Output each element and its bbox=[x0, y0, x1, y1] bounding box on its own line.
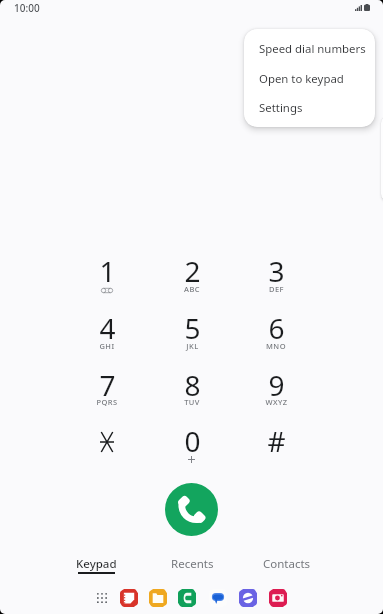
button[interactable]: 4 bbox=[69, 309, 145, 361]
staticText: 7 bbox=[99, 366, 116, 404]
staticText: 4 bbox=[99, 309, 116, 347]
staticText: WXYZ bbox=[265, 397, 288, 407]
staticText: Settings bbox=[259, 100, 303, 116]
button[interactable]: 3 bbox=[238, 252, 314, 304]
button[interactable]: # bbox=[238, 422, 314, 474]
staticText: 0 bbox=[184, 422, 201, 460]
staticText: Speed dial numbers bbox=[259, 41, 366, 57]
button[interactable]: Open to keypad bbox=[244, 64, 375, 94]
button[interactable]: Internet bbox=[239, 589, 257, 607]
staticText: Keypad bbox=[76, 556, 117, 572]
button[interactable]: Phone bbox=[178, 589, 196, 607]
button[interactable]: 5 bbox=[154, 309, 230, 361]
staticText: Recents bbox=[171, 556, 214, 572]
button[interactable]: Settings bbox=[244, 94, 375, 122]
button[interactable]: 8 bbox=[154, 366, 230, 418]
staticText: GHI bbox=[99, 341, 115, 351]
staticText: 10:00 bbox=[14, 1, 40, 15]
button[interactable]: Camera bbox=[269, 589, 287, 607]
button[interactable]: 6 bbox=[238, 309, 314, 361]
button[interactable]: 0 bbox=[154, 422, 230, 474]
button[interactable] bbox=[69, 422, 145, 474]
button[interactable]: Recents bbox=[145, 552, 239, 578]
button[interactable]: 2 bbox=[154, 252, 230, 304]
staticText: Open to keypad bbox=[259, 71, 344, 87]
button[interactable]: All apps bbox=[96, 592, 108, 604]
staticText: ABC bbox=[184, 284, 200, 294]
button[interactable]: Contacts bbox=[240, 552, 334, 578]
button[interactable]: Files bbox=[149, 589, 167, 607]
staticText: 9 bbox=[268, 366, 285, 404]
staticText: 8 bbox=[184, 366, 201, 404]
button[interactable]: Keypad bbox=[49, 552, 143, 578]
staticText: PQRS bbox=[96, 397, 118, 407]
button[interactable]: 7 bbox=[69, 366, 145, 418]
button[interactable]: 1 bbox=[69, 252, 145, 304]
button[interactable]: 9 bbox=[238, 366, 314, 418]
button[interactable]: Speed dial numbers bbox=[244, 34, 375, 64]
staticText: 3 bbox=[268, 252, 285, 290]
staticText: JKL bbox=[186, 341, 199, 351]
staticText: TUV bbox=[184, 397, 200, 407]
staticText: 6 bbox=[268, 309, 285, 347]
staticText: DEF bbox=[269, 284, 284, 294]
staticText: # bbox=[267, 422, 286, 460]
staticText: 2 bbox=[184, 252, 201, 290]
staticText: 1 bbox=[99, 252, 116, 290]
staticText: Contacts bbox=[263, 556, 311, 572]
staticText: MNO bbox=[266, 341, 286, 351]
staticText: 5 bbox=[184, 309, 201, 347]
button[interactable]: Keep notes bbox=[120, 589, 138, 607]
button[interactable]: Messages bbox=[209, 589, 227, 607]
button[interactable]: Call bbox=[165, 483, 218, 536]
